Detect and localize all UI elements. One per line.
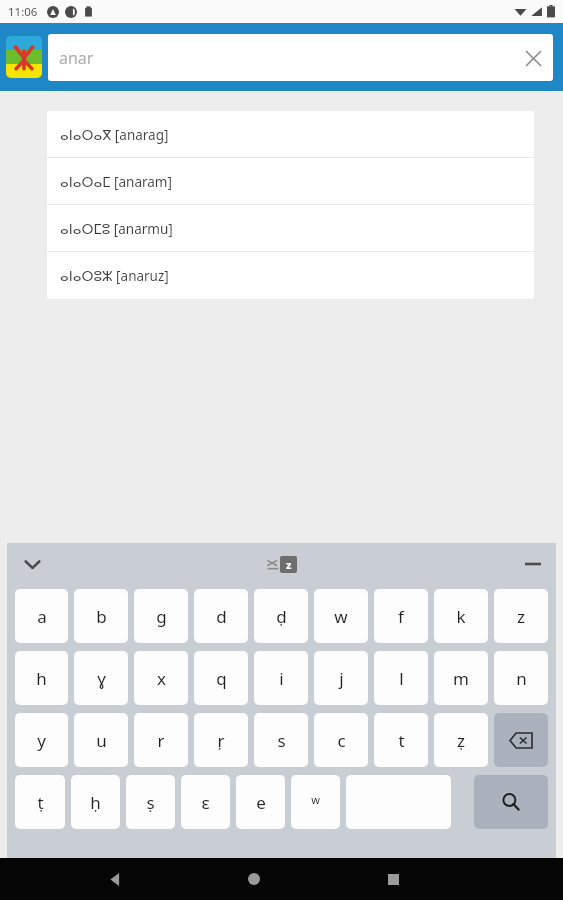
- button[interactable]: Clear: [513, 38, 553, 78]
- button[interactable]: ⴰⵏⴰⵔⴰⵎ [anaram]: [47, 158, 534, 205]
- staticText: f: [398, 605, 404, 628]
- staticText: z: [286, 557, 292, 572]
- button[interactable]: ⴰⵏⴰⵔⵓⵣ [anaruz]: [47, 252, 534, 299]
- staticText: u: [96, 729, 107, 752]
- staticText: ṣ: [146, 791, 155, 814]
- staticText: m: [453, 667, 469, 690]
- staticText: e: [256, 791, 266, 814]
- button[interactable]: ṛ: [194, 713, 248, 767]
- button[interactable]: w: [314, 589, 368, 643]
- staticText: r: [157, 729, 165, 752]
- staticText: ʷ: [311, 791, 320, 814]
- button[interactable]: Switch language: [266, 556, 297, 573]
- button[interactable]: Home: [230, 858, 278, 900]
- button[interactable]: Hide keyboard: [15, 547, 49, 581]
- staticText: i: [279, 667, 284, 690]
- button[interactable]: s: [254, 713, 308, 767]
- button[interactable]: ẓ: [434, 713, 488, 767]
- staticText: s: [277, 729, 286, 752]
- button[interactable]: h: [15, 651, 68, 705]
- button[interactable]: u: [74, 713, 128, 767]
- staticText: anar: [59, 47, 94, 69]
- staticText: g: [156, 605, 167, 628]
- staticText: b: [96, 605, 107, 628]
- staticText: h: [36, 667, 47, 690]
- staticText: x: [157, 667, 166, 690]
- button[interactable]: e: [236, 775, 285, 829]
- button[interactable]: x: [134, 651, 188, 705]
- button[interactable]: c: [314, 713, 368, 767]
- button[interactable]: Back: [91, 858, 139, 900]
- staticText: ṭ: [37, 791, 44, 814]
- button[interactable]: ɣ: [74, 651, 128, 705]
- staticText: t: [398, 729, 405, 752]
- staticText: z: [517, 605, 525, 628]
- button[interactable]: i: [254, 651, 308, 705]
- staticText: ḍ: [276, 605, 287, 628]
- staticText: ⴰⵏⴰⵔⴰⵎ [anaram]: [60, 173, 172, 191]
- staticText: ɛ: [201, 791, 210, 814]
- button[interactable]: Search: [474, 775, 548, 829]
- staticText: ḥ: [90, 791, 101, 814]
- button[interactable]: r: [134, 713, 188, 767]
- button[interactable]: y: [15, 713, 68, 767]
- staticText: ⴰⵏⴰⵔⴰⴳ [anarag]: [60, 126, 169, 144]
- staticText: a: [37, 605, 47, 628]
- button[interactable]: ṣ: [126, 775, 175, 829]
- staticText: 11:06: [8, 4, 38, 20]
- button[interactable]: z: [494, 589, 548, 643]
- staticText: l: [399, 667, 404, 690]
- button[interactable]: Recent apps: [369, 858, 417, 900]
- button[interactable]: ɛ: [181, 775, 230, 829]
- staticText: ṛ: [217, 729, 225, 752]
- button[interactable]: a: [15, 589, 68, 643]
- staticText: ẓ: [457, 729, 465, 752]
- button[interactable]: ḍ: [254, 589, 308, 643]
- button[interactable]: j: [314, 651, 368, 705]
- button[interactable]: l: [374, 651, 428, 705]
- staticText: c: [337, 729, 346, 752]
- button[interactable]: anar: [48, 34, 553, 81]
- staticText: ⴰⵏⴰⵔⵓⵣ [anaruz]: [60, 267, 169, 285]
- button[interactable]: f: [374, 589, 428, 643]
- button[interactable]: t: [374, 713, 428, 767]
- button[interactable]: ʷ: [291, 775, 340, 829]
- button[interactable]: App logo: [6, 36, 42, 78]
- staticText: q: [216, 667, 227, 690]
- staticText: n: [516, 667, 527, 690]
- button[interactable]: m: [434, 651, 488, 705]
- staticText: ⴰⵏⴰⵔⵎⵓ [anarmu]: [60, 220, 173, 238]
- staticText: d: [216, 605, 227, 628]
- button[interactable]: ⴰⵏⴰⵔⵎⵓ [anarmu]: [47, 205, 534, 252]
- button[interactable]: ḥ: [71, 775, 120, 829]
- staticText: k: [456, 605, 466, 628]
- staticText: y: [37, 729, 46, 752]
- staticText: ɣ: [97, 667, 106, 690]
- button[interactable]: d: [194, 589, 248, 643]
- button[interactable]: ṭ: [15, 775, 65, 829]
- staticText: j: [339, 667, 344, 690]
- button[interactable]: b: [74, 589, 128, 643]
- button[interactable]: ⴰⵏⴰⵔⴰⴳ [anarag]: [47, 111, 534, 158]
- button[interactable]: k: [434, 589, 488, 643]
- button[interactable]: n: [494, 651, 548, 705]
- button[interactable]: Backspace: [494, 713, 548, 767]
- button[interactable]: q: [194, 651, 248, 705]
- button[interactable]: g: [134, 589, 188, 643]
- staticText: w: [334, 605, 348, 628]
- button[interactable]: Minimize: [518, 549, 548, 579]
